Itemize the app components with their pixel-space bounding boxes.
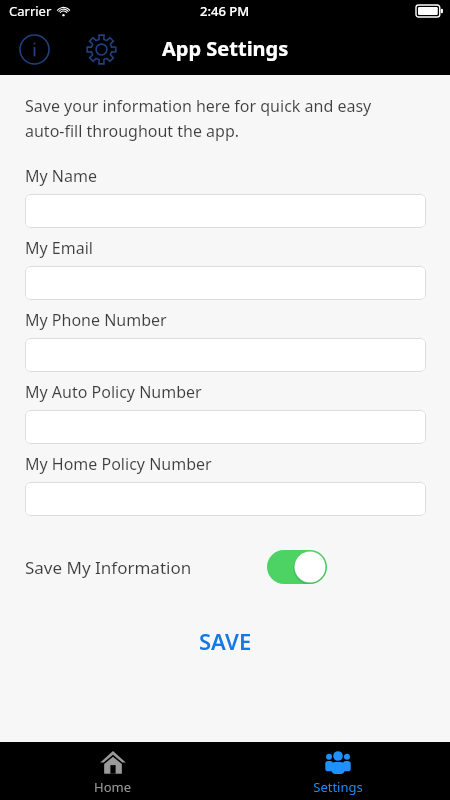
button[interactable] [25,266,426,300]
button[interactable]: Information [12,27,56,71]
button[interactable]: Save My Information toggle, on [267,550,327,584]
button[interactable] [25,410,426,444]
staticText: Home [94,778,131,796]
staticText: Carrier [9,2,52,20]
staticText: My Email [25,237,93,259]
staticText: My Name [25,165,97,187]
button[interactable]: Settings [225,742,450,800]
staticText: My Phone Number [25,309,167,331]
button[interactable]: Save My Information [0,545,450,589]
staticText: SAVE [199,626,252,656]
button[interactable]: Home [0,742,225,800]
button[interactable] [25,194,426,228]
staticText: App Settings [162,35,289,62]
staticText: Save your information here for quick and… [25,95,382,141]
button[interactable] [25,338,426,372]
button[interactable]: Settings [79,27,123,71]
staticText: Save My Information [25,556,192,579]
staticText: 2:46 PM [200,2,250,20]
staticText: My Home Policy Number [25,453,212,475]
staticText: Settings [313,778,363,796]
button[interactable] [25,482,426,516]
button[interactable]: SAVE [173,621,278,661]
staticText: My Auto Policy Number [25,381,202,403]
